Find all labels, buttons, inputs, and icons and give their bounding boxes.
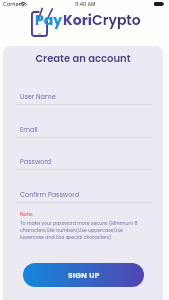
staticText: 11:40 AM (75, 1, 96, 8)
staticText: Kori (63, 10, 92, 30)
staticText: Carrier (3, 1, 21, 8)
staticText: Confirm Password (20, 190, 80, 199)
button[interactable]: Password (16, 157, 152, 170)
staticText: Create an account (3, 51, 163, 65)
staticText: Email (20, 125, 38, 134)
staticText: Password (20, 157, 52, 166)
staticText: To make your password more secure: (Mini… (20, 220, 143, 241)
button[interactable]: User Name (16, 92, 152, 105)
button[interactable]: SIGN UP (23, 263, 144, 287)
staticText: Pay (35, 10, 63, 30)
staticText: SIGN UP (68, 270, 100, 280)
staticText: Note: (20, 211, 33, 218)
button[interactable]: Email (16, 125, 152, 138)
staticText: Crypto (92, 10, 141, 30)
staticText: User Name (20, 92, 56, 101)
button[interactable]: Confirm Password (16, 190, 152, 203)
